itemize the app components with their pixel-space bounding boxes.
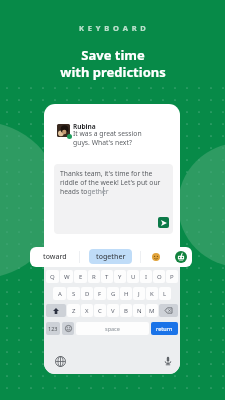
button[interactable]: X [81, 304, 93, 317]
staticText: U [131, 273, 136, 281]
staticText: together [96, 252, 126, 262]
staticText: Thanks team, it's time for the riddle of… [60, 169, 161, 196]
button[interactable]: 123 [46, 322, 60, 335]
button[interactable]: Y [114, 270, 126, 283]
staticText: A [58, 290, 62, 298]
staticText: H [124, 290, 129, 298]
button[interactable]: Shift [46, 304, 66, 317]
button[interactable]: Change language [55, 356, 66, 367]
button[interactable]: Backspace [159, 304, 178, 317]
staticText: W [64, 273, 70, 281]
staticText: X [85, 307, 89, 315]
button[interactable]: toward [39, 250, 71, 264]
button[interactable]: space [76, 322, 149, 335]
staticText: toward [43, 252, 67, 262]
staticText: J [138, 290, 140, 298]
button[interactable]: T [101, 270, 113, 283]
button[interactable]: Voice input [163, 356, 173, 366]
staticText: KEYBOARD [79, 23, 150, 33]
button[interactable]: L [159, 287, 171, 300]
button[interactable]: N [133, 304, 145, 317]
staticText: B [124, 307, 128, 315]
button[interactable]: G [107, 287, 119, 300]
button[interactable]: K [146, 287, 158, 300]
button[interactable]: A [53, 287, 66, 300]
staticText: D [85, 290, 90, 298]
staticText: Rubina [73, 122, 96, 131]
button[interactable]: P [166, 270, 178, 283]
button[interactable]: S [67, 287, 80, 300]
button[interactable]: O [153, 270, 165, 283]
staticText: N [137, 307, 142, 315]
staticText: V [111, 307, 115, 315]
staticText: 123 [48, 325, 58, 332]
staticText: I [145, 273, 148, 281]
staticText: Z [72, 307, 76, 315]
button[interactable]: R [88, 270, 100, 283]
button[interactable]: M [146, 304, 158, 317]
staticText: S [72, 290, 76, 298]
button[interactable]: V [107, 304, 119, 317]
button[interactable]: D [81, 287, 93, 300]
staticText: O [157, 273, 162, 281]
staticText: P [170, 273, 174, 281]
staticText: L [163, 290, 167, 298]
button[interactable]: Assistant [175, 251, 187, 263]
button[interactable]: U [127, 270, 139, 283]
button[interactable]: Z [67, 304, 80, 317]
button[interactable]: Emoji keyboard [62, 322, 74, 335]
staticText: It was a great session guys. What's next… [73, 129, 142, 147]
staticText: Q [50, 273, 55, 281]
staticText: R [92, 273, 96, 281]
button[interactable]: E [74, 270, 87, 283]
staticText: return [156, 325, 173, 332]
staticText: G [111, 290, 116, 298]
staticText: K [150, 290, 154, 298]
button[interactable]: B [120, 304, 132, 317]
button[interactable]: F [94, 287, 106, 300]
staticText: space [105, 325, 120, 332]
button[interactable]: W [60, 270, 73, 283]
staticText: Save time with predictions [60, 46, 166, 81]
staticText: T [105, 273, 109, 281]
button[interactable]: H [120, 287, 132, 300]
button[interactable]: return [151, 322, 178, 335]
button[interactable]: together [89, 249, 132, 264]
button[interactable]: C [94, 304, 106, 317]
button[interactable]: I [140, 270, 152, 283]
staticText: Y [118, 273, 122, 281]
staticText: C [98, 307, 102, 315]
button[interactable]: J [133, 287, 145, 300]
staticText: F [98, 290, 102, 298]
button[interactable]: Send [158, 217, 169, 228]
button[interactable]: Emoji [152, 253, 160, 261]
staticText: M [149, 307, 155, 315]
button[interactable]: Q [46, 270, 59, 283]
staticText: E [79, 273, 83, 281]
